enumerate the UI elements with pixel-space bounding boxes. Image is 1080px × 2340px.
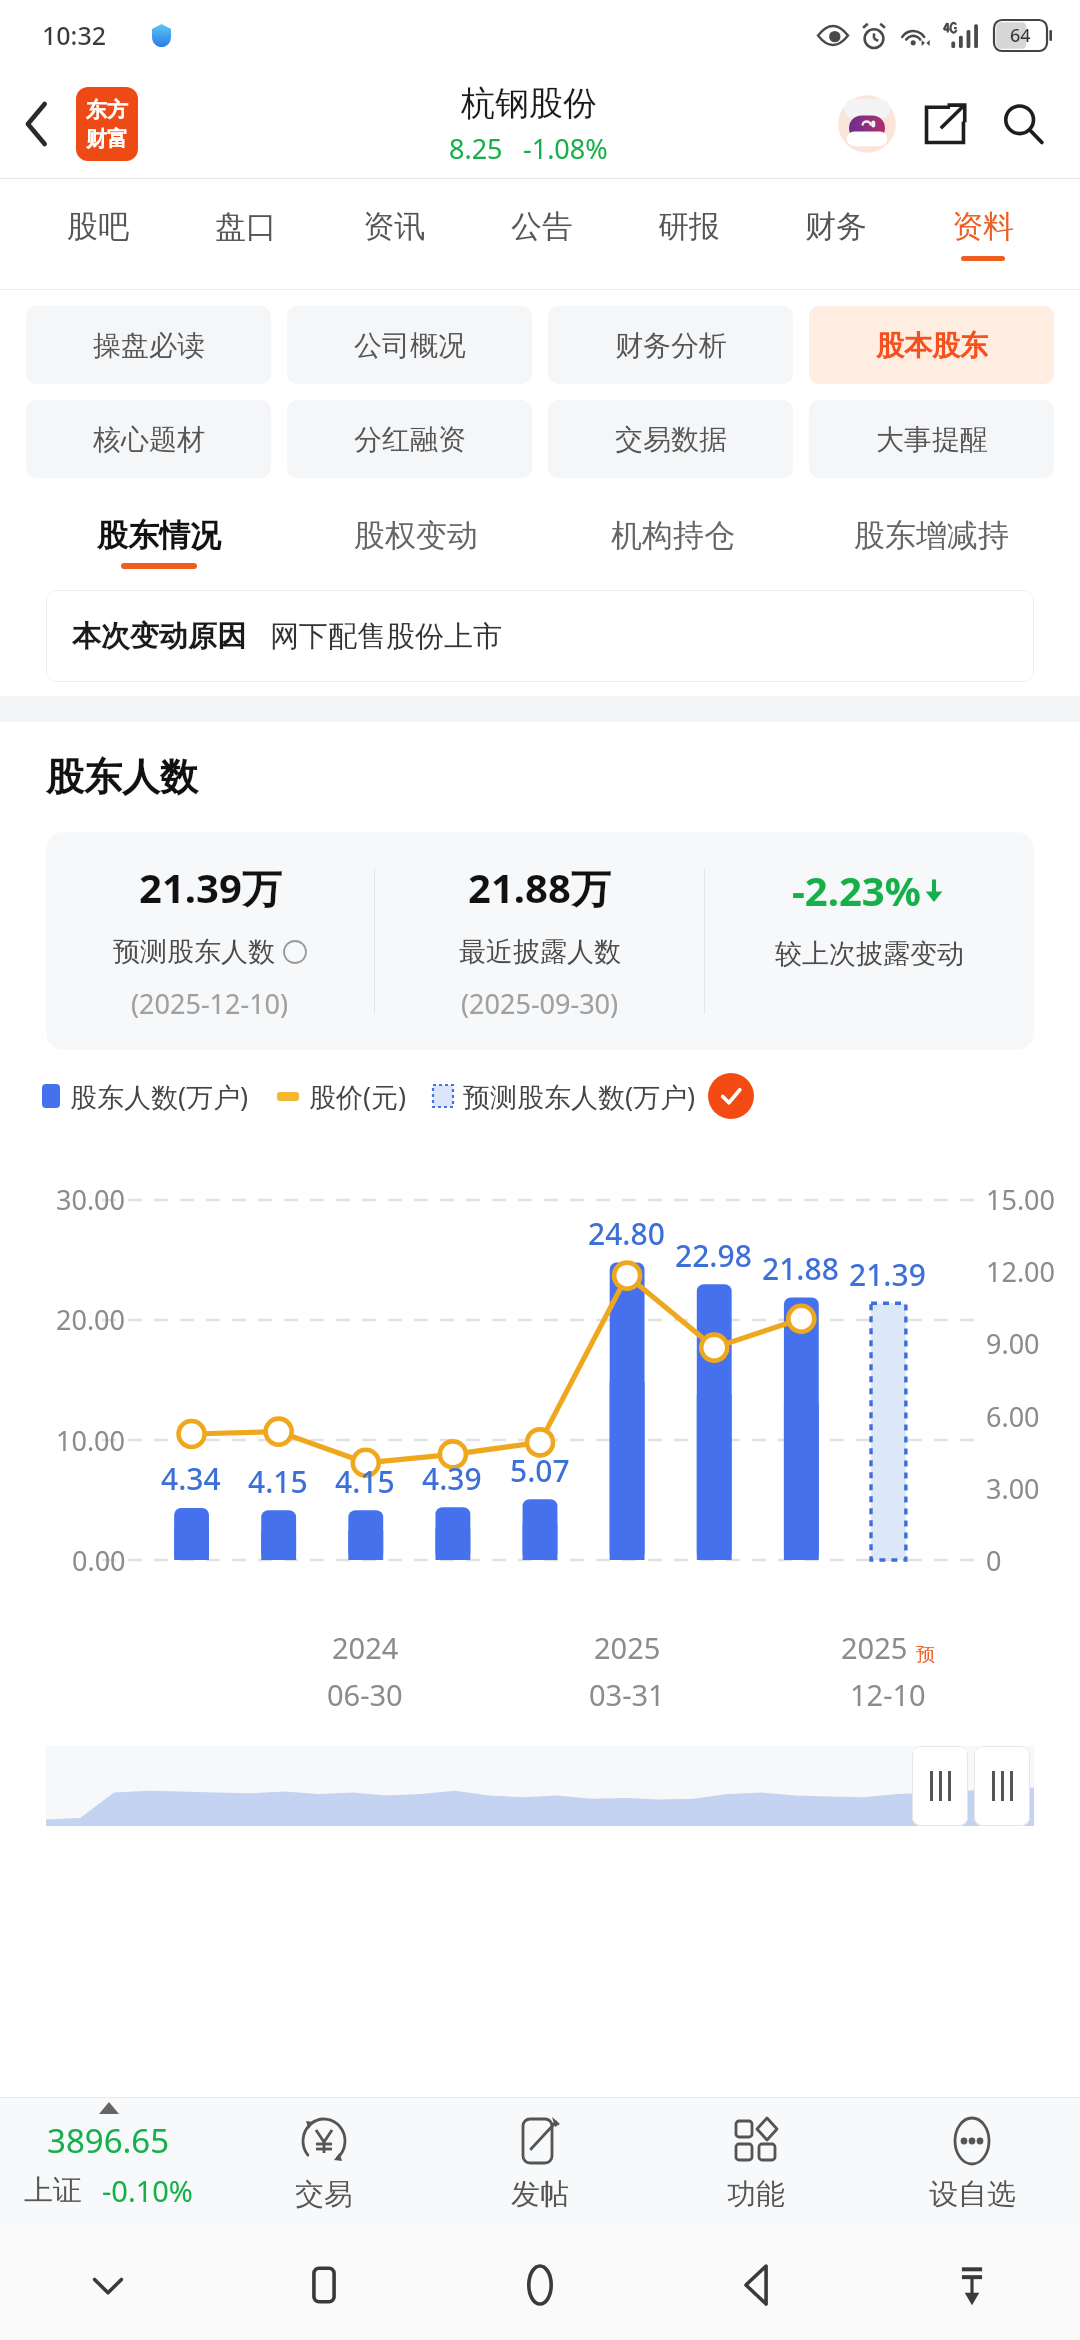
staticText: -2.23%	[792, 863, 921, 917]
staticText: 发帖	[511, 2176, 569, 2213]
button[interactable]: 交易	[216, 2098, 432, 2230]
button[interactable]: 股吧	[24, 178, 172, 290]
button[interactable]: Collapse	[0, 2230, 216, 2340]
staticText: 预测股东人数(万户)	[463, 1078, 696, 1115]
staticText: 股价(元)	[309, 1078, 407, 1115]
staticText: 财务分析	[615, 328, 727, 363]
button[interactable]: Search	[984, 85, 1062, 163]
button[interactable]: 3896.65	[0, 2098, 216, 2230]
button[interactable]: Share	[906, 85, 984, 163]
button[interactable]: 盘口	[172, 178, 320, 290]
staticText: 股权变动	[354, 516, 478, 555]
staticText: 3896.65	[47, 2118, 170, 2163]
staticText: 06-30	[327, 1675, 403, 1714]
staticText: 15.00	[986, 1181, 1056, 1218]
staticText: 财富	[86, 126, 128, 152]
button[interactable]: 财务分析	[548, 306, 793, 384]
staticText: 6.00	[986, 1398, 1040, 1435]
button[interactable]: 股权变动	[287, 494, 544, 590]
staticText: -1.08%	[523, 130, 608, 167]
button[interactable]: 股本股东	[809, 306, 1054, 384]
staticText: 较上次披露变动	[775, 937, 964, 971]
staticText: 预测股东人数	[113, 935, 275, 969]
button[interactable]: 资讯	[320, 178, 468, 290]
staticText: 上证	[24, 2172, 82, 2209]
staticText: 22.98	[675, 1235, 752, 1276]
staticText: 20.00	[56, 1301, 126, 1338]
button[interactable]: 功能	[648, 2098, 864, 2230]
staticText: 10.00	[56, 1422, 126, 1459]
button[interactable]: 股东增减持	[802, 494, 1060, 590]
staticText: 2025	[841, 1628, 908, 1667]
button[interactable]: 机构持仓	[544, 494, 802, 590]
button[interactable]: East Money	[76, 87, 138, 161]
staticText: 4.39	[422, 1458, 482, 1499]
staticText: 股东人数(万户)	[70, 1078, 249, 1115]
button[interactable]: Download	[864, 2230, 1080, 2340]
button[interactable]: AI assistant	[828, 85, 906, 163]
staticText: 3.00	[986, 1470, 1040, 1507]
staticText: 股吧	[67, 207, 129, 246]
staticText: 9.00	[986, 1325, 1040, 1362]
staticText: 公告	[511, 207, 573, 246]
button[interactable]: 设自选	[864, 2098, 1080, 2230]
staticText: 最近披露人数	[459, 935, 621, 969]
staticText: (2025-12-10)	[131, 985, 289, 1022]
staticText: 5.07	[510, 1450, 570, 1491]
button[interactable]: 核心题材	[26, 400, 271, 478]
staticText: 网下配售股份上市	[270, 618, 502, 655]
staticText: 设自选	[929, 2176, 1016, 2213]
staticText: 12.00	[986, 1253, 1056, 1290]
staticText: 大事提醒	[876, 422, 988, 457]
button[interactable]: Recents	[216, 2230, 432, 2340]
staticText: 2025	[594, 1628, 661, 1667]
staticText: 8.25	[449, 130, 503, 167]
button[interactable]: 操盘必读	[26, 306, 271, 384]
staticText: 交易	[295, 2176, 353, 2213]
button[interactable]: 大事提醒	[809, 400, 1054, 478]
staticText: 12-10	[850, 1675, 926, 1714]
staticText: 交易数据	[615, 422, 727, 457]
staticText: 30.00	[56, 1181, 126, 1218]
button[interactable]: -2.23%	[705, 832, 1034, 1050]
button[interactable]: Home	[432, 2230, 648, 2340]
staticText: (2025-09-30)	[461, 985, 619, 1022]
staticText: 21.39万	[139, 860, 282, 915]
staticText: 21.88	[762, 1248, 839, 1289]
staticText: 21.88万	[468, 860, 611, 915]
button[interactable]: 研报	[615, 178, 762, 290]
button[interactable]: Range end	[974, 1746, 1030, 1826]
staticText: 4.34	[161, 1458, 221, 1499]
staticText: 预	[916, 1643, 935, 1667]
button[interactable]: Toggle forecast	[708, 1073, 754, 1119]
button[interactable]: 分红融资	[287, 400, 532, 478]
staticText: 21.39	[849, 1254, 926, 1295]
button[interactable]: 21.88万	[375, 832, 704, 1050]
button[interactable]: 21.39万	[46, 832, 374, 1050]
button[interactable]: 股东情况	[30, 494, 287, 590]
button[interactable]: Back	[6, 93, 68, 155]
button[interactable]: Range start	[912, 1746, 968, 1826]
staticText: -0.10%	[102, 2171, 193, 2210]
staticText: 4.15	[248, 1461, 308, 1502]
staticText: 核心题材	[93, 422, 205, 457]
button[interactable]: 发帖	[432, 2098, 648, 2230]
button[interactable]: 公告	[468, 178, 615, 290]
staticText: 10:32	[42, 18, 107, 52]
staticText: 03-31	[589, 1675, 665, 1714]
staticText: 研报	[658, 207, 720, 246]
staticText: 东方	[86, 97, 128, 123]
staticText: 股东人数	[46, 753, 198, 801]
staticText: 盘口	[215, 207, 277, 246]
staticText: 64	[1010, 23, 1031, 48]
staticText: 股东情况	[97, 516, 221, 555]
button[interactable]: 财务	[762, 178, 909, 290]
staticText: 本次变动原因	[72, 618, 246, 655]
button[interactable]: Back	[648, 2230, 864, 2340]
button[interactable]: 本次变动原因	[46, 590, 1034, 682]
staticText: 杭钢股份	[461, 82, 597, 125]
button[interactable]: 公司概况	[287, 306, 532, 384]
button[interactable]: 交易数据	[548, 400, 793, 478]
staticText: 操盘必读	[93, 328, 205, 363]
button[interactable]: 资料	[909, 178, 1056, 290]
